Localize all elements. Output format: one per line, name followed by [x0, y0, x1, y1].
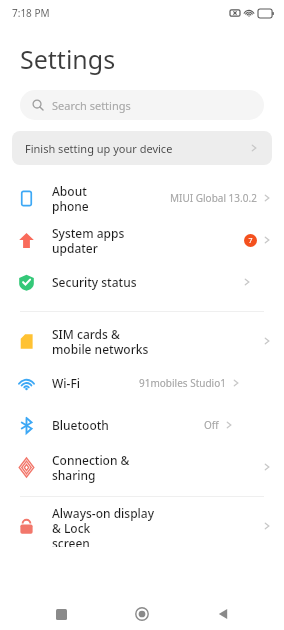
staticText: Off — [204, 418, 219, 432]
button[interactable]: Security status — [0, 261, 284, 303]
button[interactable]: Finish setting up your device — [12, 131, 272, 165]
staticText: Finish setting up your device — [25, 141, 249, 156]
staticText: Security status — [52, 274, 137, 290]
staticText: Always-on display & Lock screen — [52, 505, 157, 547]
button[interactable]: About phone — [0, 177, 284, 219]
staticText: 91mobiles Studio1 — [139, 376, 226, 390]
button[interactable]: Home — [122, 598, 162, 630]
button[interactable]: Always-on display & Lock screen — [0, 505, 284, 547]
button[interactable]: SIM cards & mobile networks — [0, 320, 284, 362]
staticText: About phone — [52, 183, 111, 214]
staticText: Wi-Fi — [52, 375, 80, 391]
staticText: Search settings — [52, 98, 131, 113]
staticText: SIM cards & mobile networks — [52, 326, 157, 357]
staticText: Settings — [20, 42, 116, 76]
button[interactable]: Bluetooth — [0, 404, 284, 446]
button[interactable]: Back — [203, 598, 243, 630]
staticText: 7:18 PM — [12, 6, 50, 20]
button[interactable]: Recents — [41, 598, 81, 630]
staticText: MIUI Global 13.0.2 — [170, 191, 257, 205]
button[interactable]: Search settings — [20, 90, 264, 120]
staticText: Bluetooth — [52, 417, 109, 433]
staticText: Connection & sharing — [52, 452, 157, 483]
button[interactable]: Connection & sharing — [0, 446, 284, 488]
staticText: System apps updater — [52, 225, 148, 256]
button[interactable]: Wi-Fi — [0, 362, 284, 404]
staticText: 7 — [248, 236, 253, 246]
button[interactable]: System apps updater — [0, 219, 284, 261]
